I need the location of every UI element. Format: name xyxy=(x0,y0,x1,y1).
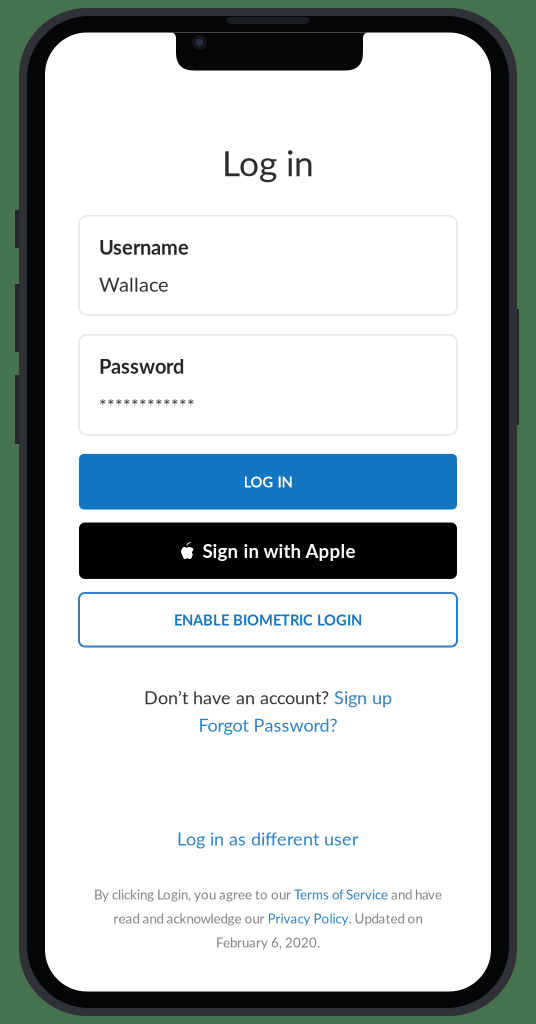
staticText: Privacy Policy xyxy=(267,910,348,926)
staticText: read and acknowledge our xyxy=(113,910,267,926)
staticText: Sign in with Apple xyxy=(202,539,355,562)
staticText: By clicking Login, you agree to our xyxy=(94,886,294,902)
button[interactable]: LOG IN xyxy=(79,454,457,509)
staticText: Username xyxy=(99,235,189,259)
staticText: February 6, 2020. xyxy=(216,934,320,950)
staticText: Don’t have an account? xyxy=(144,686,329,708)
staticText: Log in xyxy=(222,141,314,184)
staticText: ************ xyxy=(99,394,195,416)
staticText: Password xyxy=(99,354,184,378)
staticText: and have xyxy=(388,886,442,902)
staticText: . Updated on xyxy=(348,910,422,926)
button[interactable]: Terms of Service xyxy=(294,886,388,902)
staticText: LOG IN xyxy=(243,473,292,490)
staticText: Forgot Password? xyxy=(198,714,337,736)
button[interactable]: Sign in with Apple xyxy=(79,522,457,579)
staticText: Sign up xyxy=(334,686,392,708)
staticText: Terms of Service xyxy=(294,886,388,902)
button[interactable]: ENABLE BIOMETRIC LOGIN xyxy=(79,593,457,646)
staticText: Log in as different user xyxy=(177,828,359,849)
staticText: ENABLE BIOMETRIC LOGIN xyxy=(174,611,362,628)
button[interactable]: Forgot Password? xyxy=(198,714,337,736)
button[interactable]: Log in as different user xyxy=(177,828,359,849)
button[interactable]: Privacy Policy xyxy=(267,910,348,926)
staticText: Wallace xyxy=(99,272,169,296)
button[interactable]: Sign up xyxy=(334,686,392,708)
